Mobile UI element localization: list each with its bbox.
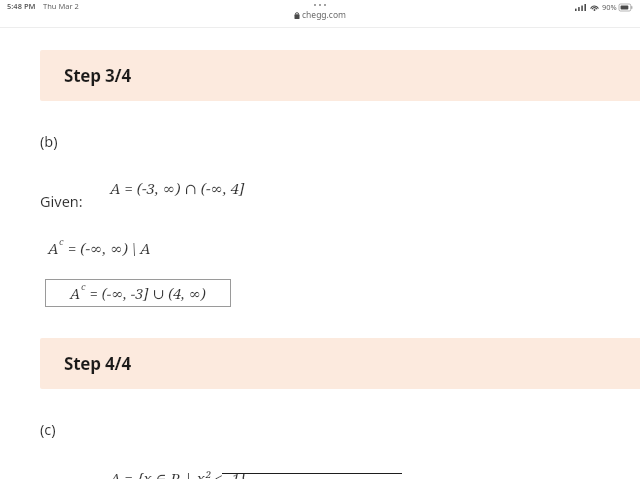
staticText: = (−∞, −3] ∪ (4, ∞): [86, 283, 206, 303]
staticText: (b): [40, 131, 58, 151]
button[interactable]: Address bar chegg.com: [230, 0, 410, 21]
staticText: Thu Mar 2: [43, 1, 79, 11]
staticText: Step 3/4: [64, 64, 131, 87]
staticText: A = {x ∈ R | x² < −1}: [110, 468, 247, 479]
staticText: A: [48, 238, 59, 258]
staticText: A: [70, 283, 81, 303]
button[interactable]: A: [45, 279, 231, 307]
staticText: c: [81, 280, 86, 293]
staticText: Step 4/4: [64, 352, 131, 375]
staticText: c: [59, 235, 64, 248]
staticText: (c): [40, 419, 56, 439]
button[interactable]: Step 3/4: [40, 50, 640, 101]
staticText: = (−∞, ∞) \ A: [64, 238, 151, 258]
staticText: 90%: [602, 2, 617, 12]
staticText: chegg.com: [302, 9, 347, 21]
button[interactable]: Step 4/4: [40, 338, 640, 389]
staticText: Given:: [40, 191, 83, 211]
staticText: 5:48 PM: [7, 1, 36, 11]
staticText: A = (−3, ∞) ∩ (−∞, 4]: [110, 178, 245, 198]
